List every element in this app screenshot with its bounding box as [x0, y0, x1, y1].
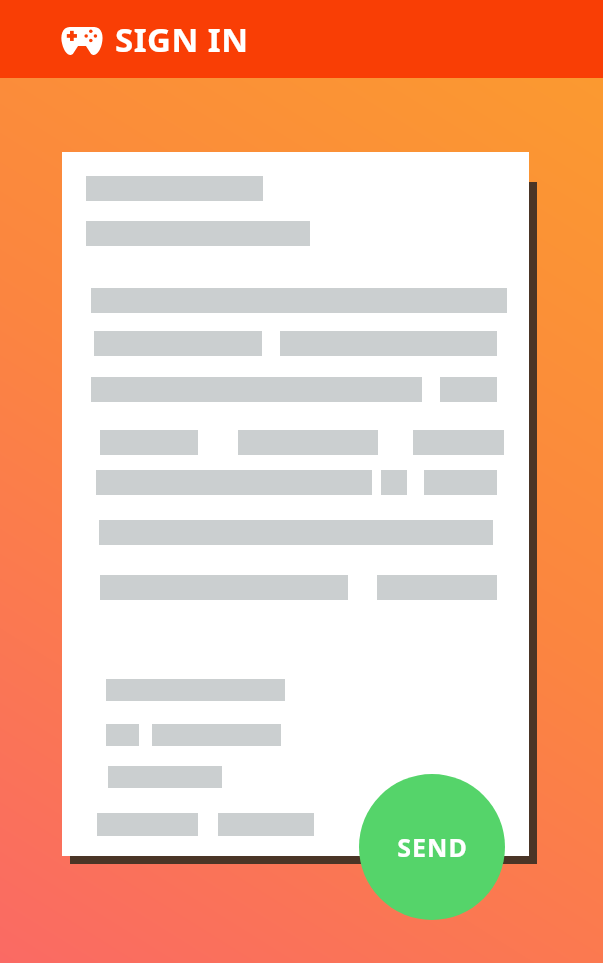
button[interactable] — [62, 152, 529, 856]
button[interactable]: Games — [60, 23, 104, 57]
staticText: SEND — [397, 830, 468, 864]
button[interactable]: SEND — [359, 774, 505, 920]
staticText: SIGN IN — [115, 17, 249, 62]
